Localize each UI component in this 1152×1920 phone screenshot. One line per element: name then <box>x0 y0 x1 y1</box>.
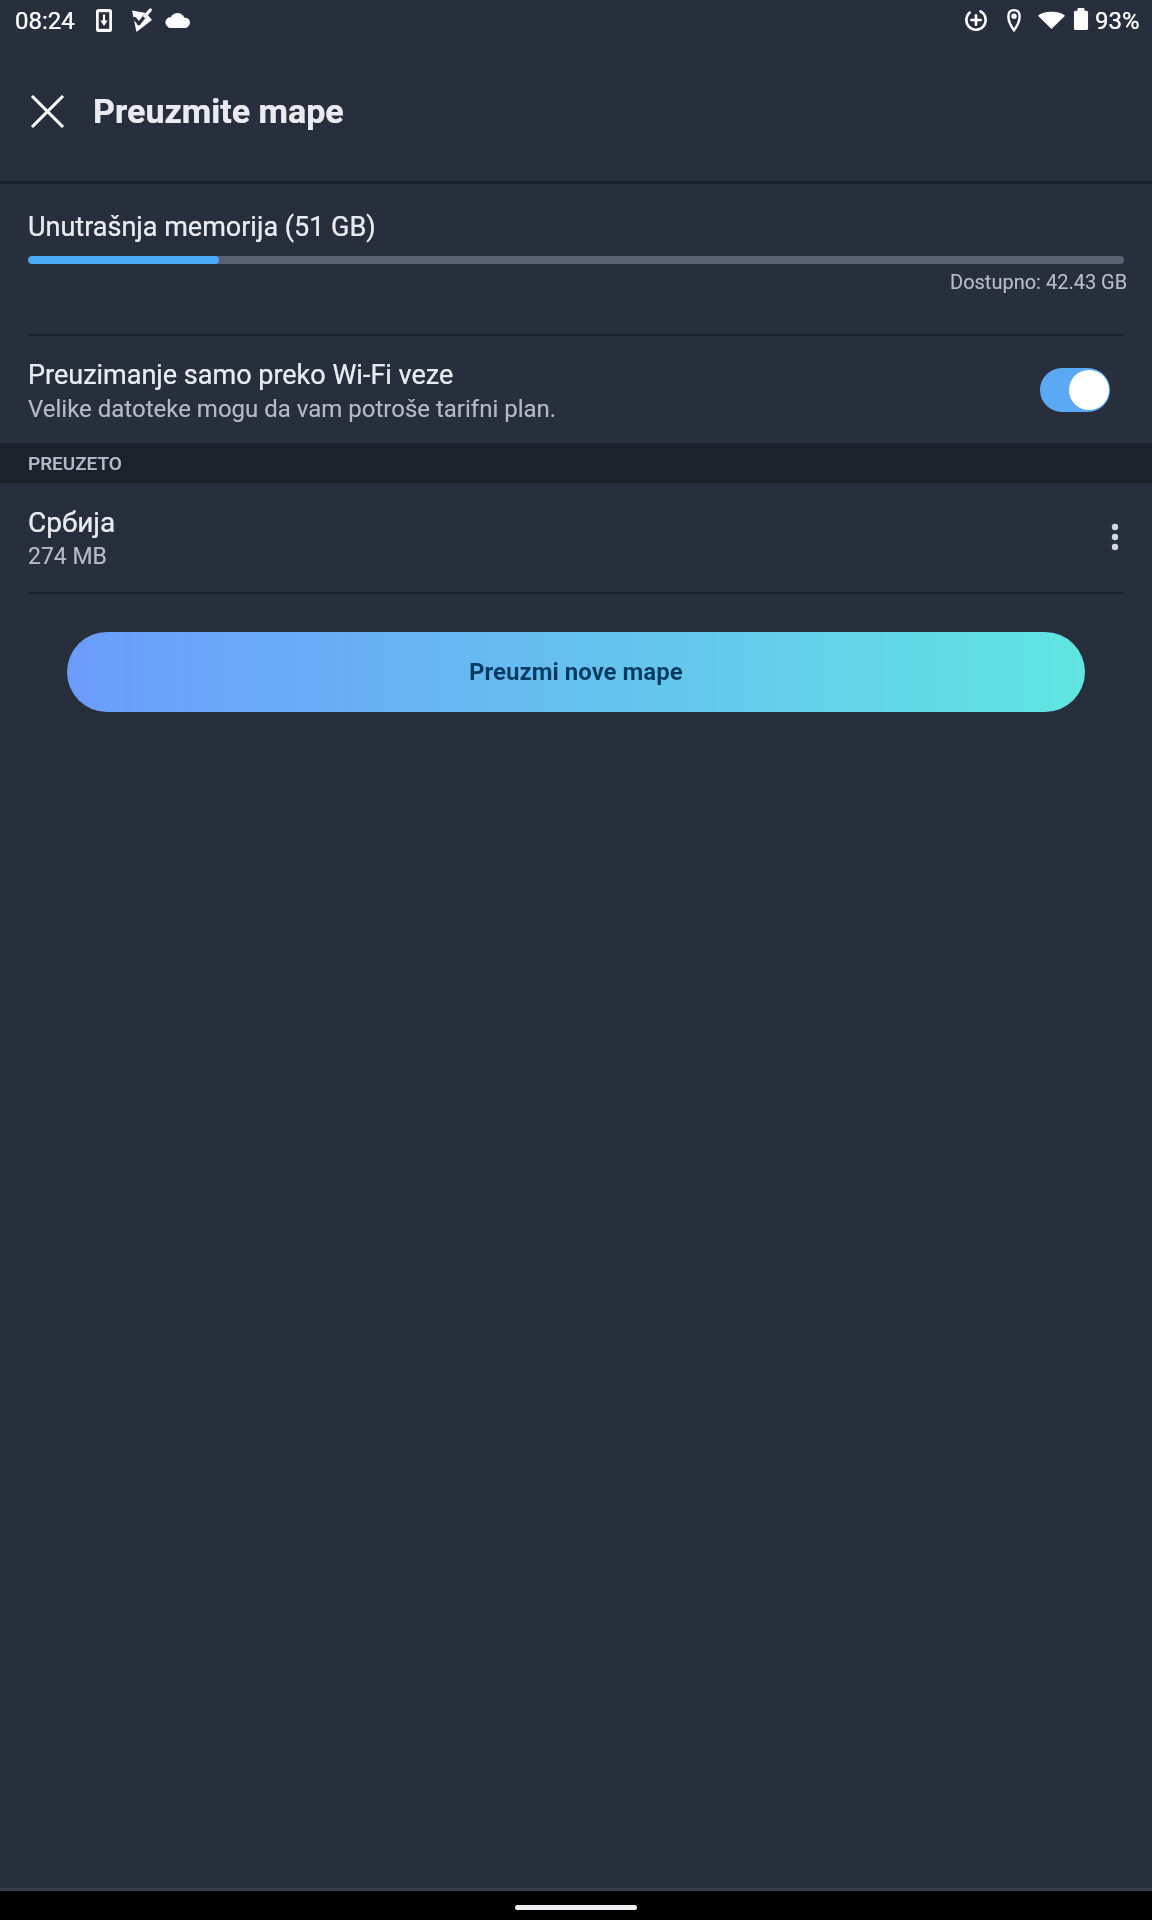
button[interactable]: Preuzimanje samo preko Wi-Fi veze <box>0 334 1152 443</box>
staticText: PREUZETO <box>28 452 122 474</box>
button[interactable]: Download over Wi-Fi only <box>1040 368 1110 412</box>
button[interactable]: Preuzmi nove mape <box>67 632 1085 712</box>
staticText: Preuzmite mape <box>93 91 344 131</box>
staticText: Србија <box>28 506 116 539</box>
staticText: Preuzimanje samo preko Wi-Fi veze <box>28 359 454 391</box>
staticText: 93% <box>1095 7 1140 35</box>
button[interactable]: More options <box>1091 513 1139 561</box>
staticText: 08:24 <box>15 7 75 35</box>
staticText: 274 MB <box>28 543 107 570</box>
button[interactable]: Србија <box>0 483 1152 592</box>
staticText: Unutrašnja memorija (51 GB) <box>28 211 376 243</box>
button[interactable]: Close <box>15 79 79 143</box>
staticText: Dostupno: 42.43 GB <box>950 270 1128 293</box>
staticText: Preuzmi nove mape <box>469 658 683 686</box>
staticText: Velike datoteke mogu da vam potroše tari… <box>28 395 557 423</box>
